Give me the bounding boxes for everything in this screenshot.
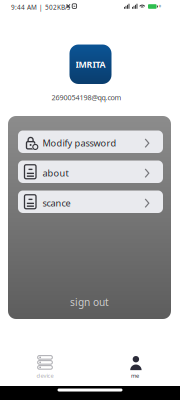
staticText: IMRITA — [75, 58, 105, 70]
button[interactable]: sign out — [8, 289, 171, 315]
button[interactable]: about — [18, 160, 163, 183]
button[interactable]: scance — [18, 190, 163, 213]
button[interactable]: Modify password — [18, 130, 163, 153]
button[interactable]: device — [0, 352, 90, 382]
staticText: Modify password — [42, 137, 116, 149]
staticText: me — [131, 372, 139, 379]
staticText: device — [36, 372, 53, 379]
staticText: sign out — [70, 295, 109, 309]
staticText: scance — [42, 197, 70, 209]
staticText: + — [158, 3, 161, 10]
staticText: 9:44 AM | 502KB/s — [11, 3, 70, 12]
button[interactable]: me — [90, 352, 180, 382]
staticText: 2690054198@qq.com — [51, 93, 121, 102]
staticText: about — [42, 167, 68, 179]
